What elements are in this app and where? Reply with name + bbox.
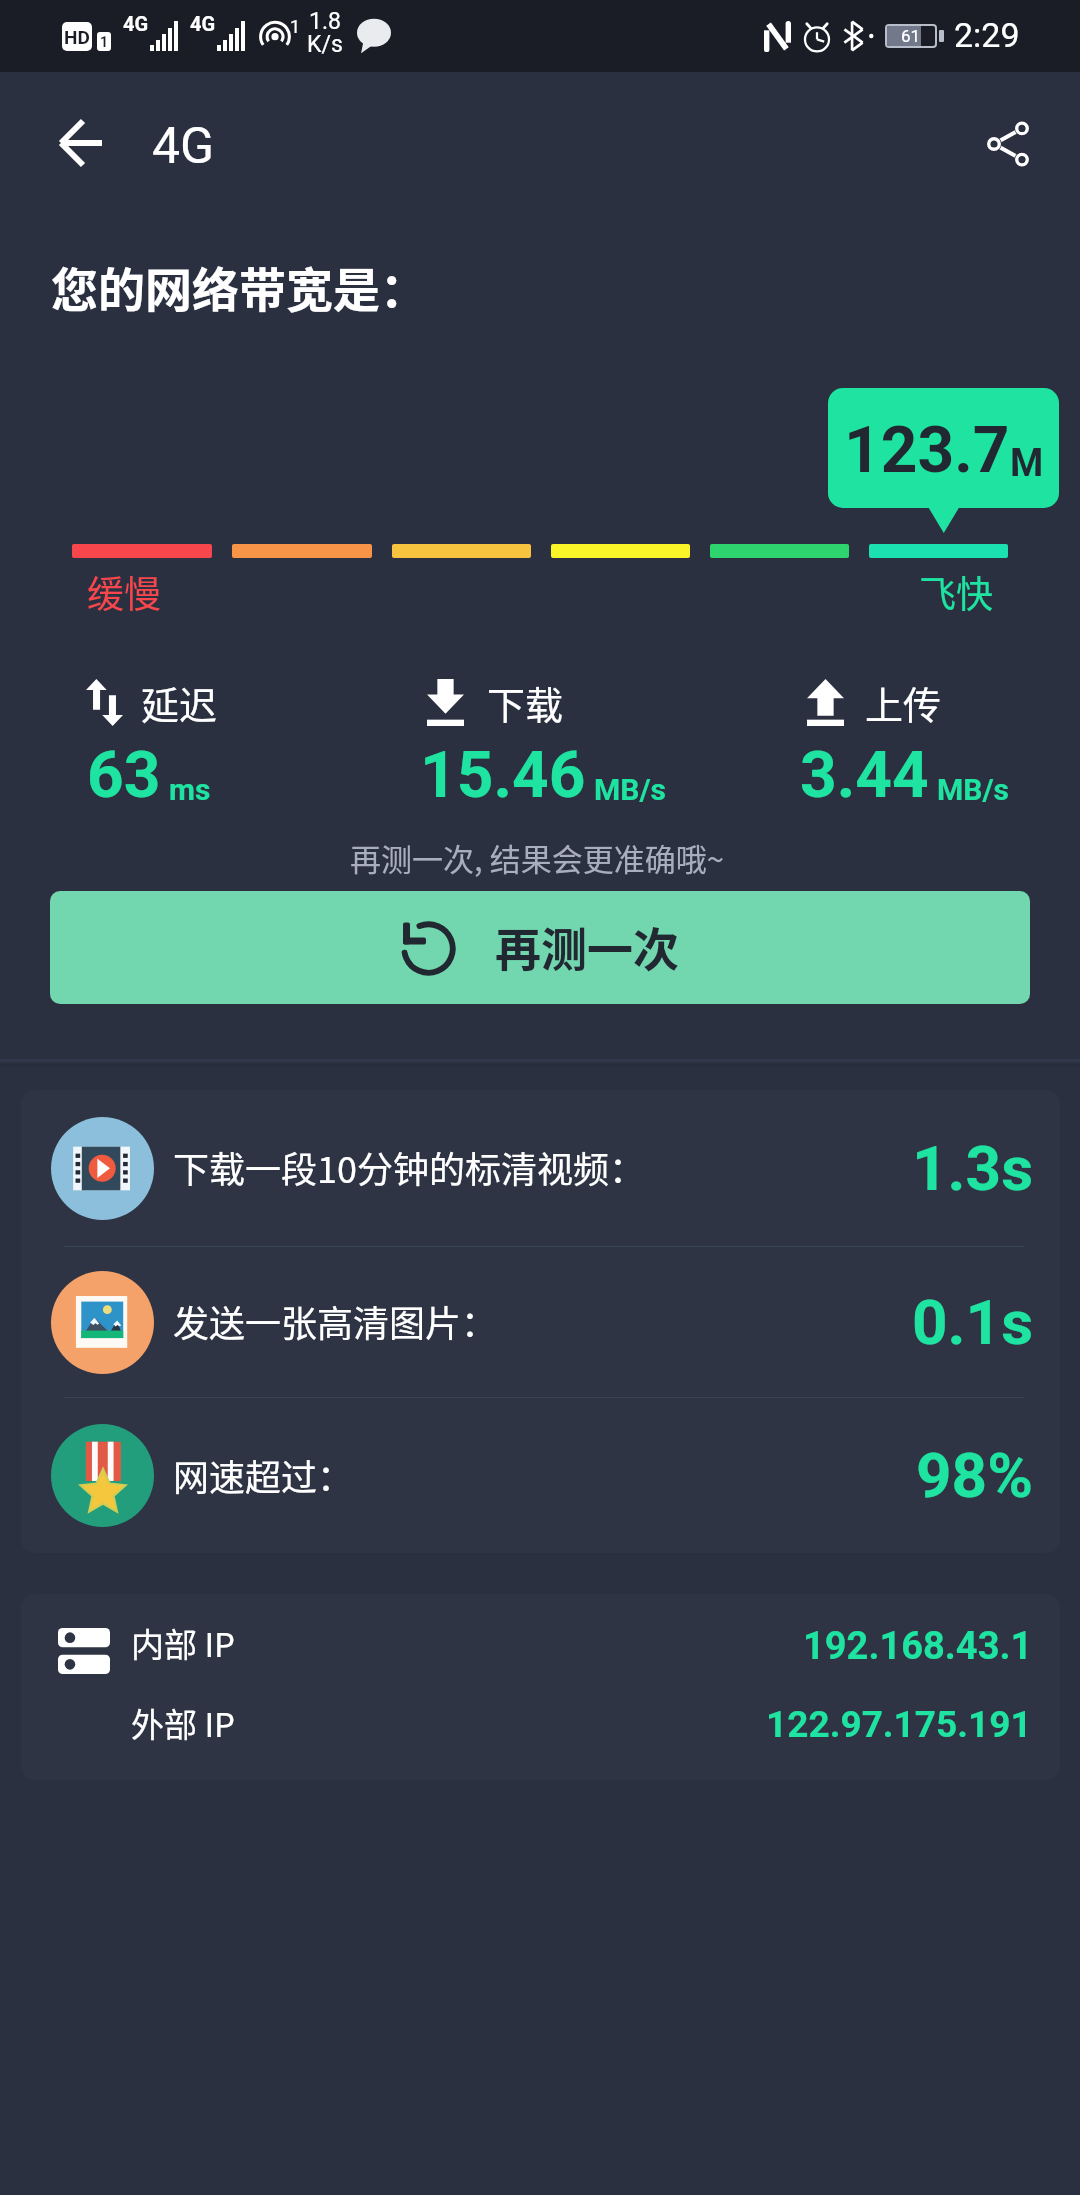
staticText: 192.168.43.1 — [803, 1624, 1033, 1669]
staticText: 4G — [152, 117, 215, 176]
staticText: MB/s — [937, 772, 1009, 807]
staticText: 外部 IP — [131, 1699, 235, 1747]
button[interactable]: 网速超过： — [21, 1398, 1060, 1553]
staticText: 1.3s — [912, 1132, 1033, 1205]
staticText: 1 — [290, 16, 301, 37]
button[interactable]: Back — [41, 103, 121, 183]
staticText: M — [1010, 441, 1044, 486]
staticText: 上传 — [865, 675, 942, 730]
button[interactable]: 内部 IP — [21, 1610, 1060, 1686]
button[interactable]: Share — [968, 104, 1048, 184]
button[interactable]: 外部 IP — [21, 1690, 1060, 1766]
button[interactable]: 再测一次 — [50, 891, 1030, 1004]
staticText: 延迟 — [141, 675, 218, 730]
staticText: 15.46 — [420, 738, 586, 813]
button[interactable]: 发送一张高清图片： — [21, 1247, 1060, 1397]
staticText: 网速超过： — [173, 1449, 354, 1501]
staticText: 63 — [87, 738, 161, 813]
staticText: 61 — [901, 26, 921, 46]
staticText: 98% — [916, 1439, 1033, 1512]
staticText: ms — [169, 772, 211, 807]
staticText: 内部 IP — [131, 1619, 235, 1667]
staticText: HD — [64, 26, 90, 48]
staticText: 3.44 — [800, 738, 929, 813]
staticText: K/s — [307, 31, 343, 58]
staticText: 再测一次, 结果会更准确哦~ — [0, 835, 1077, 880]
staticText: 下载一段10分钟的标清视频： — [173, 1141, 645, 1193]
staticText: 下载 — [487, 675, 564, 730]
button[interactable]: 下载一段10分钟的标清视频： — [21, 1090, 1060, 1246]
staticText: 123.7 — [844, 413, 1010, 488]
staticText: 您的网络带宽是： — [51, 252, 427, 320]
staticText: 缓慢 — [87, 565, 161, 619]
staticText: 4G — [123, 12, 149, 35]
staticText: 发送一张高清图片： — [173, 1295, 498, 1347]
staticText: MB/s — [594, 772, 666, 807]
staticText: 1 — [100, 34, 109, 50]
staticText: 0.1s — [912, 1286, 1033, 1359]
staticText: 122.97.175.191 — [766, 1703, 1032, 1746]
staticText: 4G — [190, 12, 216, 35]
staticText: 飞快 — [919, 565, 993, 619]
staticText: 1.8 — [309, 8, 341, 35]
staticText: 再测一次 — [495, 913, 679, 980]
staticText: 2:29 — [954, 15, 1020, 55]
